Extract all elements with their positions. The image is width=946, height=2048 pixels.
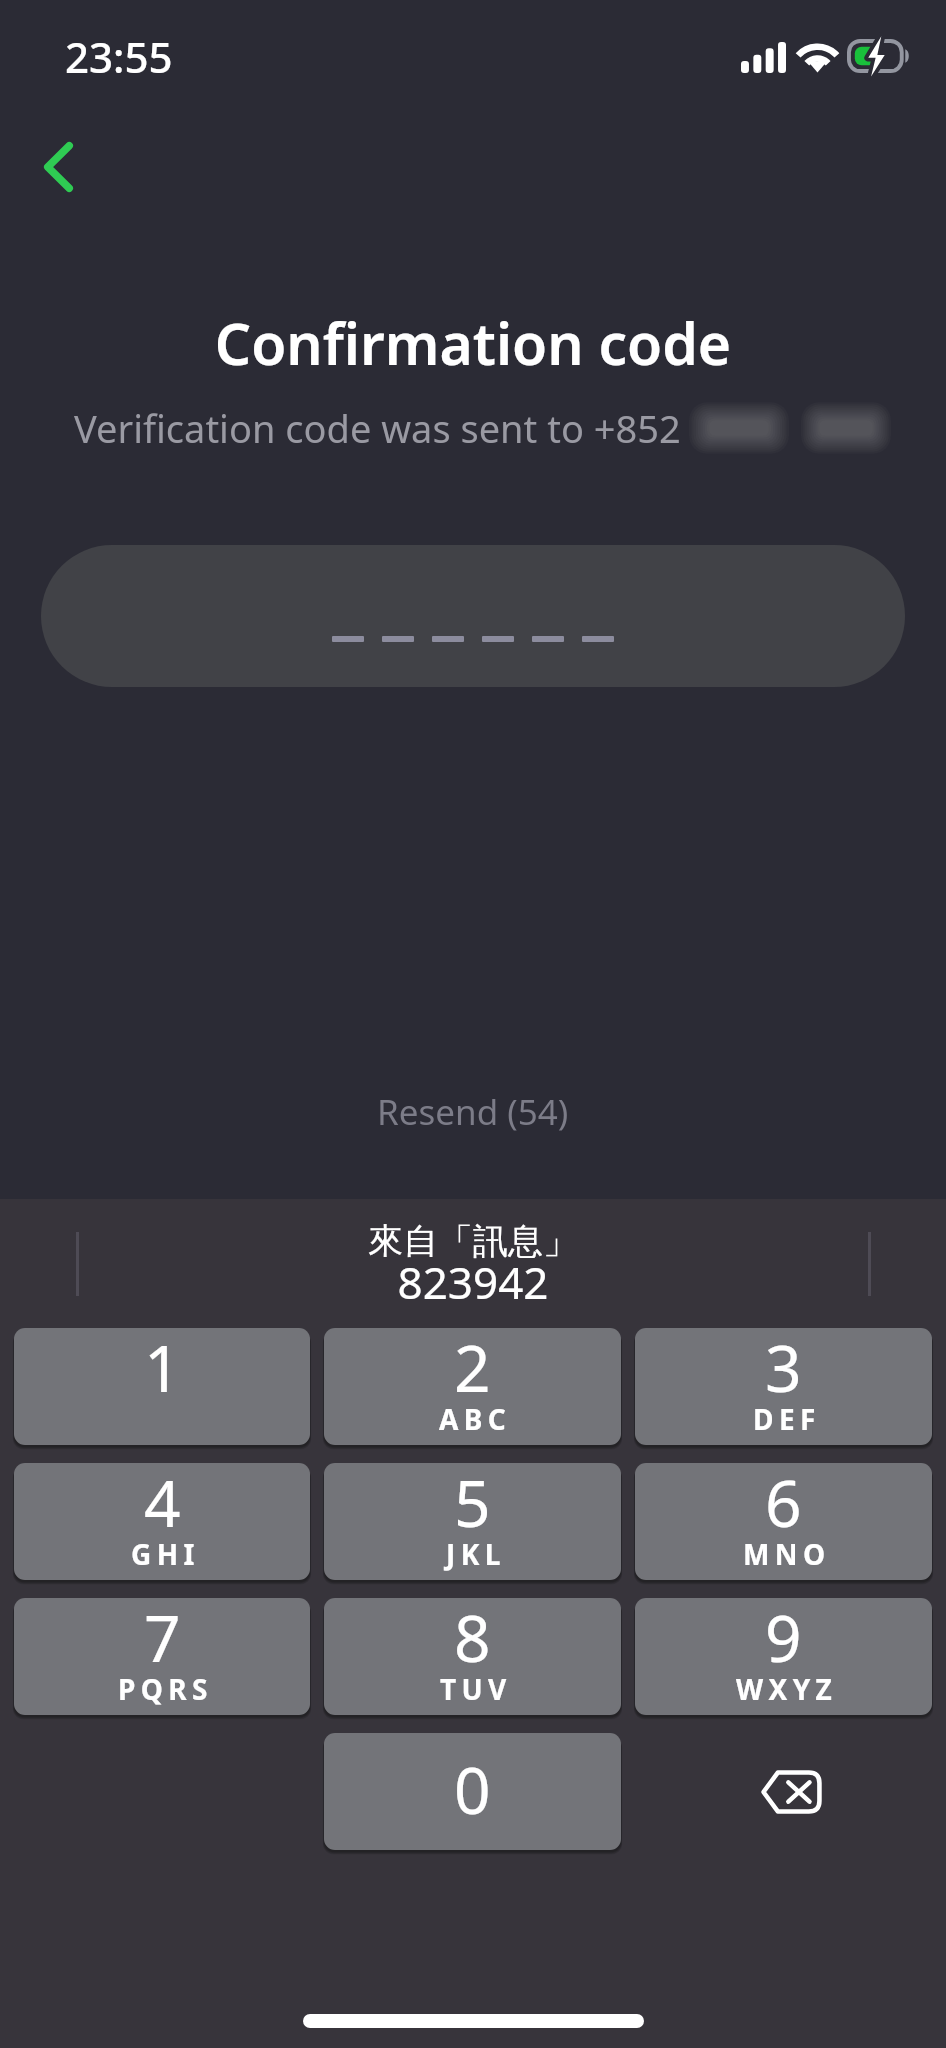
button[interactable]: 8 [324, 1598, 621, 1715]
button[interactable]: 6 [635, 1463, 932, 1580]
button[interactable]: Backspace [635, 1733, 932, 1850]
staticText: 5 [454, 1463, 491, 1546]
staticText: Verification code was sent to +852 [74, 402, 681, 454]
staticText: 4 [144, 1463, 181, 1546]
button[interactable]: Resend (54) [367, 1082, 579, 1142]
button[interactable] [41, 545, 905, 687]
staticText: TUV [440, 1670, 512, 1708]
staticText: 7 [144, 1598, 181, 1681]
staticText: MNO [743, 1535, 831, 1573]
staticText: JKL [446, 1535, 506, 1573]
staticText: 0 [454, 1746, 491, 1833]
button[interactable]: 4 [14, 1463, 310, 1580]
staticText: DEF [753, 1400, 821, 1438]
staticText: 來自「訊息」 [368, 1219, 578, 1263]
button[interactable]: 3 [635, 1328, 932, 1445]
staticText: WXYZ [736, 1670, 838, 1708]
button[interactable]: 1 [14, 1328, 310, 1445]
staticText: ABC [439, 1400, 512, 1438]
staticText: 8 [454, 1598, 491, 1681]
button[interactable]: Back [0, 117, 130, 217]
staticText: 2 [454, 1328, 491, 1411]
button[interactable]: 9 [635, 1598, 932, 1715]
staticText: PQRS [118, 1670, 213, 1708]
staticText: GHI [131, 1535, 200, 1573]
button[interactable]: 5 [324, 1463, 621, 1580]
button[interactable]: 7 [14, 1598, 310, 1715]
staticText: 3 [765, 1328, 802, 1411]
staticText: 9 [765, 1598, 802, 1681]
staticText: 1 [144, 1328, 181, 1411]
button[interactable]: 0 [324, 1733, 621, 1850]
staticText: 23:55 [65, 28, 173, 85]
staticText: 6 [765, 1463, 802, 1546]
staticText: 823942 [397, 1252, 549, 1312]
button[interactable]: 2 [324, 1328, 621, 1445]
staticText: Confirmation code [0, 304, 946, 382]
button[interactable]: 來自「訊息」 [0, 1199, 946, 1328]
